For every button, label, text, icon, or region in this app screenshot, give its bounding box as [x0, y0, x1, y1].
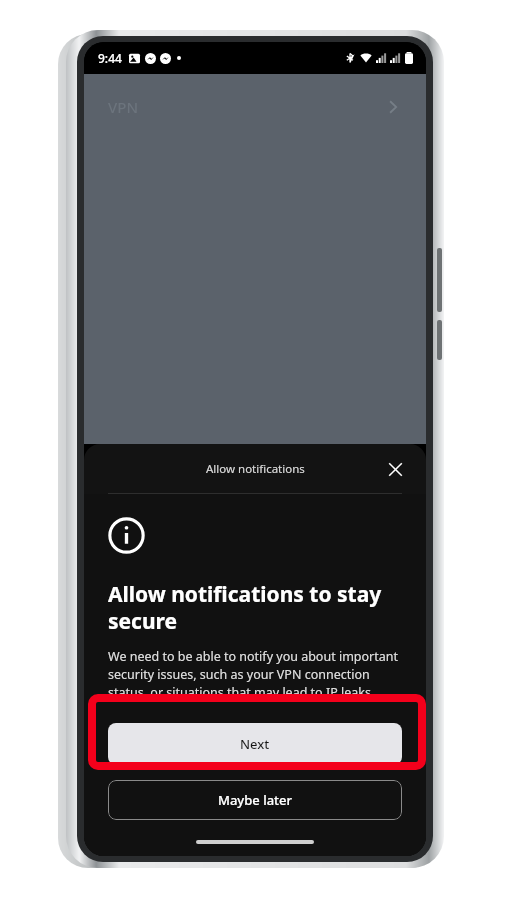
staticText: Allow notifications: [206, 461, 305, 477]
button[interactable]: VPN: [108, 97, 139, 117]
button[interactable]: Open VPN settings: [378, 92, 408, 122]
staticText: Maybe later: [218, 791, 293, 809]
staticText: We need to be able to notify you about i…: [108, 648, 402, 701]
staticText: VPN: [108, 97, 139, 117]
button[interactable]: Next: [108, 723, 402, 765]
button[interactable]: Close: [378, 452, 412, 486]
button[interactable]: Maybe later: [108, 780, 402, 820]
staticText: 9:44: [98, 50, 122, 66]
staticText: Next: [240, 735, 270, 753]
staticText: Allow notifications to stay secure: [108, 580, 402, 635]
